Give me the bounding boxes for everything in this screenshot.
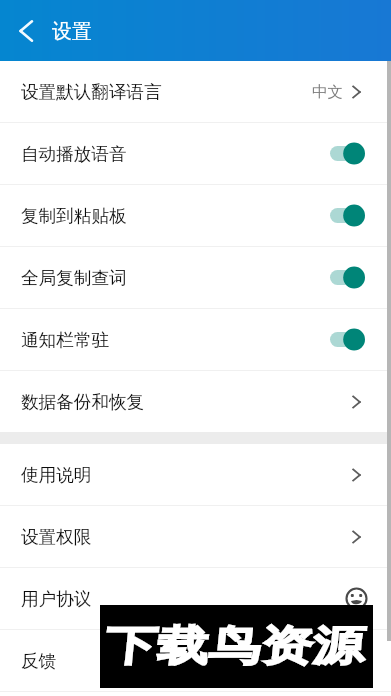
staticText: 设置	[52, 19, 92, 44]
staticText: 通知栏常驻	[21, 329, 330, 351]
staticText: 复制到粘贴板	[21, 205, 330, 227]
staticText: 中文	[312, 82, 343, 101]
staticText: 自动播放语音	[21, 143, 330, 165]
staticText: 设置默认翻译语言	[21, 81, 312, 103]
staticText: 用户协议	[21, 588, 345, 610]
staticText: 反馈	[21, 650, 352, 672]
staticText: 设置权限	[21, 526, 352, 548]
staticText: 全局复制查词	[21, 267, 330, 289]
button[interactable]: 反馈	[0, 630, 391, 691]
button[interactable]: 设置默认翻译语言	[0, 61, 391, 122]
staticText: 数据备份和恢复	[21, 391, 352, 413]
button[interactable]: 数据备份和恢复	[0, 371, 391, 432]
staticText: 使用说明	[21, 464, 352, 486]
button[interactable]: 自动播放语音	[0, 123, 391, 184]
button[interactable]: 使用说明	[0, 444, 391, 505]
staticText: 下载鸟资源	[107, 620, 366, 673]
button[interactable]: 全局复制查词	[0, 247, 391, 308]
button[interactable]: 通知栏常驻	[0, 309, 391, 370]
button[interactable]: 复制到粘贴板	[0, 185, 391, 246]
button[interactable]: 用户协议	[0, 568, 391, 629]
button[interactable]: Back	[0, 0, 46, 61]
button[interactable]: 设置权限	[0, 506, 391, 567]
